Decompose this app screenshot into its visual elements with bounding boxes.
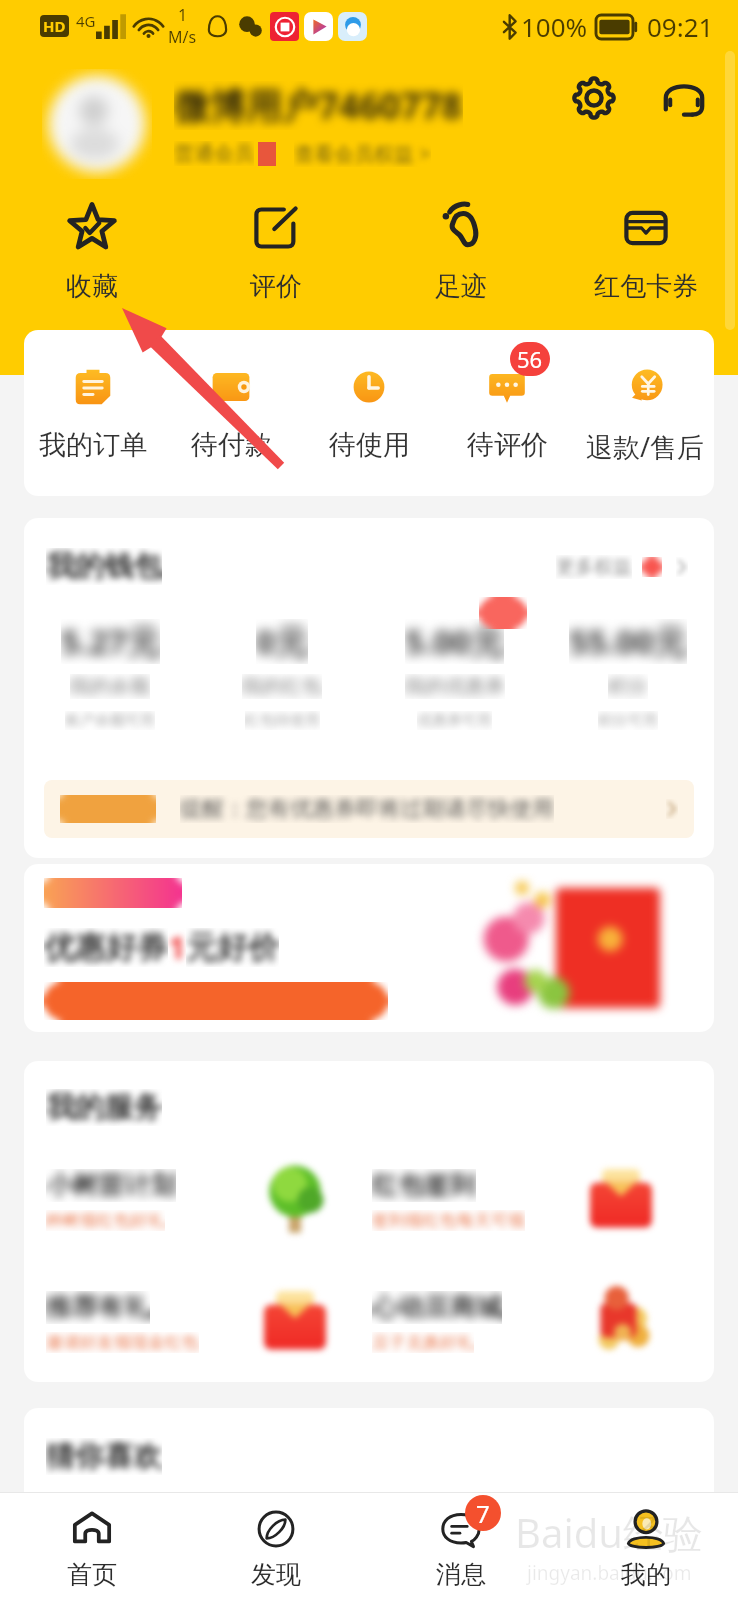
button[interactable]: 首页 (0, 1493, 184, 1600)
staticText: 豆子兑换好礼 (372, 1332, 474, 1353)
staticText: 推荐有礼 (46, 1291, 150, 1324)
staticText: 5.27元 (61, 619, 160, 664)
staticText: 邀请好友领现金红包 (46, 1332, 199, 1353)
staticText: 微博用户7460778 (174, 81, 463, 130)
staticText: 0元 (256, 619, 308, 664)
staticText: 收藏 (66, 270, 118, 303)
staticText: 红包签到 (372, 1169, 476, 1202)
staticText: 我的余额 (70, 674, 150, 699)
button[interactable]: Settings (568, 72, 620, 124)
staticText: 56 (517, 344, 543, 374)
staticText: M/s (168, 26, 197, 48)
staticText: 小树苗计划 (46, 1169, 176, 1202)
staticText: 待付款 (191, 428, 272, 462)
staticText: 发现 (251, 1559, 301, 1590)
button[interactable]: 55.00元 (541, 619, 714, 730)
staticText: 积分可用 (598, 711, 658, 730)
staticText: 退款/售后 (586, 428, 705, 465)
staticText: 积分 (608, 674, 648, 699)
button[interactable]: 56 (438, 360, 576, 462)
staticText: 种树领红包好礼 (46, 1210, 165, 1231)
staticText: 待使用 (329, 428, 410, 462)
staticText: 我的钱包 (46, 548, 162, 585)
staticText: 心动豆商城 (372, 1291, 502, 1324)
staticText: 我的服务 (46, 1089, 162, 1126)
button[interactable]: 待使用 (300, 360, 438, 462)
staticText: 猜你喜欢 (46, 1438, 162, 1475)
staticText: 55.00元 (569, 619, 687, 664)
button[interactable]: 微博用户7460778 (0, 58, 738, 190)
staticText: 1 (168, 926, 186, 968)
staticText: 签到领红包每天可领 (372, 1210, 525, 1231)
staticText: 7 (476, 1497, 490, 1530)
staticText: 1 (178, 4, 188, 26)
staticText: 100% (521, 9, 588, 44)
button[interactable]: 评价 (184, 200, 368, 320)
staticText: 红包卡券 (594, 270, 698, 303)
staticText: 提醒：您有优惠券即将过期请尽快使用 (180, 795, 554, 823)
button[interactable]: 推荐有礼 (46, 1274, 372, 1370)
button[interactable]: 足迹 (368, 200, 553, 320)
staticText: 账户余额可用 (65, 711, 155, 730)
staticText: 红包待使用 (245, 711, 320, 730)
button[interactable]: 优惠好券 (24, 864, 714, 1032)
staticText: 优惠好券 (44, 928, 168, 967)
staticText: 评价 (250, 270, 302, 303)
button[interactable]: 提醒：您有优惠券即将过期请尽快使用 (44, 780, 694, 838)
button[interactable]: 我的订单 (24, 360, 162, 462)
staticText: 我的 (621, 1559, 671, 1590)
button[interactable]: 待付款 (162, 360, 300, 462)
button[interactable]: 0元 (196, 619, 368, 730)
staticText: 4G (76, 11, 96, 31)
staticText: 足迹 (435, 270, 487, 303)
staticText: 普通会员 (174, 141, 254, 166)
button[interactable]: 红包签到 (372, 1152, 698, 1248)
staticText: jingyan.baidu.com (527, 1560, 692, 1586)
staticText: 我的优惠券 (405, 674, 505, 699)
staticText: 待评价 (467, 428, 548, 462)
button[interactable]: 退款/售后 (576, 360, 714, 465)
staticText: 我的红包 (242, 674, 322, 699)
staticText: 09:21 (647, 9, 714, 44)
button[interactable]: 红包卡券 (553, 200, 738, 320)
button[interactable]: Customer service (658, 72, 710, 124)
staticText: 首页 (67, 1559, 117, 1590)
button[interactable]: 心动豆商城 (372, 1274, 698, 1370)
button[interactable]: 收藏 (0, 200, 184, 320)
staticText: 5.00元 (405, 619, 504, 664)
staticText: 更多权益 (556, 555, 632, 579)
button[interactable]: 小树苗计划 (46, 1152, 372, 1248)
staticText: Baidu经验 (515, 1505, 704, 1560)
staticText: 优惠券可用 (417, 711, 492, 730)
button[interactable]: 7 (368, 1493, 553, 1600)
button[interactable]: 我的 (553, 1493, 738, 1600)
staticText: 查看会员权益 > (294, 140, 431, 167)
button[interactable]: 发现 (184, 1493, 368, 1600)
button[interactable]: 5.00元 (368, 619, 541, 730)
staticText: 消息 (436, 1559, 486, 1590)
staticText: 元好价 (186, 928, 279, 967)
staticText: 我的订单 (39, 428, 147, 462)
staticText: HD (43, 16, 66, 36)
button[interactable]: 5.27元 (24, 619, 196, 730)
